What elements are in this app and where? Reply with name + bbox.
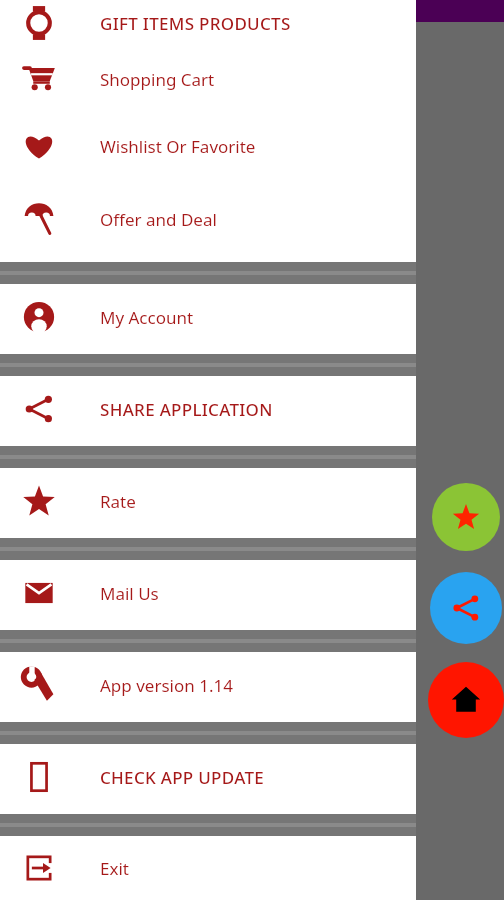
button[interactable]: Wishlist Or Favorite [0, 113, 416, 180]
staticText: Wishlist Or Favorite [100, 135, 256, 158]
button[interactable]: Offer and Deal [0, 180, 416, 258]
button[interactable]: Rate [432, 483, 500, 551]
button[interactable]: App version 1.14 [0, 652, 416, 718]
staticText: GIFT ITEMS PRODUCTS [100, 12, 291, 35]
button[interactable]: Share [430, 572, 502, 644]
staticText: SHARE APPLICATION [100, 398, 273, 421]
staticText: Rate [100, 490, 136, 513]
button[interactable]: Exit [0, 836, 416, 900]
staticText: App version 1.14 [100, 674, 233, 697]
button[interactable]: GIFT ITEMS PRODUCTS [0, 0, 416, 46]
button[interactable]: Rate [0, 468, 416, 534]
staticText: Mail Us [100, 582, 159, 605]
button[interactable]: Home [428, 662, 504, 738]
button[interactable]: SHARE APPLICATION [0, 376, 416, 442]
button[interactable]: Mail Us [0, 560, 416, 626]
button[interactable]: Shopping Cart [0, 46, 416, 113]
button[interactable]: CHECK APP UPDATE [0, 744, 416, 810]
staticText: Exit [100, 857, 129, 880]
staticText: CHECK APP UPDATE [100, 766, 265, 789]
staticText: My Account [100, 306, 194, 329]
staticText: Shopping Cart [100, 68, 215, 91]
button[interactable]: My Account [0, 284, 416, 350]
staticText: Offer and Deal [100, 208, 217, 231]
